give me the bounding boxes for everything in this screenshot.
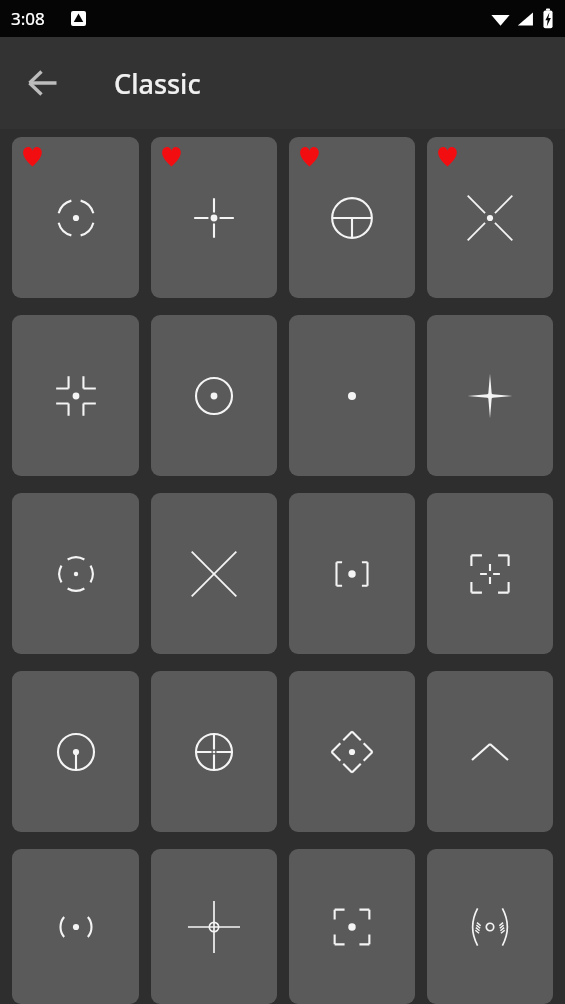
button[interactable]: Crosshair 16 (427, 671, 553, 832)
button[interactable]: Crosshair 7 (289, 315, 415, 476)
button[interactable]: Crosshair 4 (427, 137, 553, 298)
button[interactable]: Crosshair 8 (427, 315, 553, 476)
staticText: 3:08 (11, 7, 45, 30)
button[interactable]: Crosshair 15 (289, 671, 415, 832)
button[interactable]: Crosshair 11 (289, 493, 415, 654)
button[interactable]: Crosshair 1 (12, 137, 139, 298)
button[interactable]: Crosshair 20 (427, 849, 553, 1004)
button[interactable]: Crosshair 3 (289, 137, 415, 298)
button[interactable]: Crosshair 13 (12, 671, 139, 832)
button[interactable]: Crosshair 9 (12, 493, 139, 654)
staticText: Classic (114, 65, 201, 102)
button[interactable]: Crosshair 14 (151, 671, 277, 832)
button[interactable]: Crosshair 6 (151, 315, 277, 476)
button[interactable]: Crosshair 12 (427, 493, 553, 654)
button[interactable]: Crosshair 17 (12, 849, 139, 1004)
button[interactable]: Crosshair 19 (289, 849, 415, 1004)
button[interactable]: Back (14, 54, 72, 112)
button[interactable]: Crosshair 18 (151, 849, 277, 1004)
button[interactable]: Crosshair 5 (12, 315, 139, 476)
button[interactable]: Crosshair 2 (151, 137, 277, 298)
button[interactable]: Crosshair 10 (151, 493, 277, 654)
